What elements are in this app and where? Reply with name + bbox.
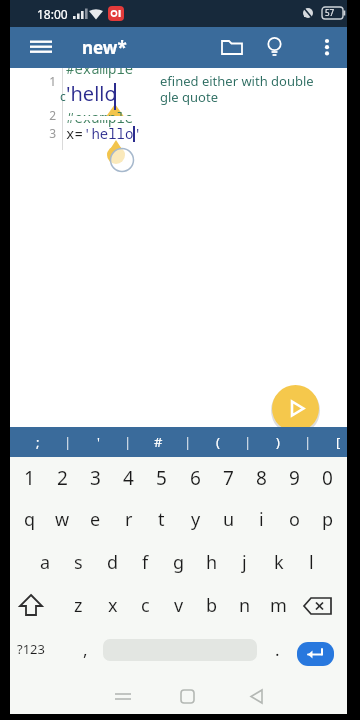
button[interactable]: 5 (145, 457, 178, 499)
staticText: c (141, 593, 150, 618)
staticText: ) (276, 433, 280, 451)
button[interactable]: ) (263, 427, 293, 457)
staticText: 'hello' (83, 124, 142, 143)
staticText: r (125, 507, 133, 532)
button[interactable]: m (262, 584, 295, 626)
button[interactable]: r (112, 498, 145, 540)
button[interactable]: s (62, 541, 95, 583)
button[interactable]: i (245, 498, 278, 540)
button[interactable]: x (96, 584, 129, 626)
button[interactable]: 7 (212, 457, 245, 499)
button[interactable] (297, 642, 334, 666)
staticText: 'hello (66, 80, 117, 107)
button[interactable]: h (195, 541, 228, 583)
button[interactable] (298, 590, 340, 622)
button[interactable] (10, 588, 52, 624)
staticText: # (154, 433, 163, 451)
button[interactable]: . (262, 632, 292, 666)
button[interactable]: 0 (311, 457, 344, 499)
button[interactable]: ( (203, 427, 233, 457)
button[interactable]: | (113, 427, 143, 457)
staticText: . (275, 638, 280, 661)
staticText: a (40, 550, 51, 575)
staticText: | (184, 433, 192, 451)
button[interactable]: 3 (79, 457, 112, 499)
staticText: x= (66, 124, 83, 143)
staticText: b (206, 593, 218, 618)
button[interactable]: c (129, 584, 162, 626)
button[interactable]: q (13, 498, 46, 540)
button[interactable]: u (212, 498, 245, 540)
staticText: 1 (34, 73, 56, 89)
button[interactable]: b (195, 584, 228, 626)
staticText: efined either with double (160, 72, 314, 90)
staticText: c (60, 88, 66, 104)
staticText: d (107, 550, 119, 575)
button[interactable]: ; (23, 427, 53, 457)
button[interactable] (312, 27, 344, 68)
staticText: t (158, 507, 165, 532)
button[interactable] (257, 27, 293, 68)
button[interactable]: n (228, 584, 261, 626)
button[interactable]: l (295, 541, 328, 583)
staticText: v (174, 593, 184, 618)
staticText: f (142, 550, 149, 575)
button[interactable]: # (143, 427, 173, 457)
staticText: y (191, 507, 201, 532)
staticText: q (24, 507, 36, 532)
button[interactable]: | (233, 427, 263, 457)
button[interactable]: w (46, 498, 79, 540)
button[interactable]: f (129, 541, 162, 583)
staticText: | (124, 433, 132, 451)
button[interactable]: z (62, 584, 95, 626)
staticText: 6 (190, 465, 201, 491)
button[interactable]: v (162, 584, 195, 626)
button[interactable]: | (173, 427, 203, 457)
button[interactable]: j (228, 541, 261, 583)
staticText: 5 (156, 465, 167, 491)
staticText: 57 (325, 7, 335, 18)
button[interactable]: 8 (245, 457, 278, 499)
staticText: 8 (256, 465, 267, 491)
staticText: l (309, 550, 314, 575)
staticText: w (55, 507, 70, 532)
button[interactable]: 4 (112, 457, 145, 499)
button[interactable]: 2 (46, 457, 79, 499)
button[interactable]: t (145, 498, 178, 540)
staticText: | (304, 433, 312, 451)
staticText: ; (36, 433, 40, 451)
button[interactable]: 1 (13, 457, 46, 499)
staticText: o (289, 507, 300, 532)
button[interactable]: e (79, 498, 112, 540)
button[interactable] (22, 27, 62, 68)
button[interactable]: d (96, 541, 129, 583)
staticText: 2 (57, 465, 68, 491)
button[interactable] (272, 385, 319, 432)
staticText: 3 (34, 125, 56, 141)
button[interactable]: ?123 (10, 632, 52, 666)
button[interactable]: [ (323, 427, 353, 457)
staticText: z (74, 593, 83, 618)
button[interactable]: y (179, 498, 212, 540)
button[interactable]: o (278, 498, 311, 540)
staticText: 2 (34, 107, 56, 123)
staticText: k (274, 550, 284, 575)
staticText: ' (97, 433, 100, 451)
button[interactable]: k (262, 541, 295, 583)
button[interactable]: | (53, 427, 83, 457)
button[interactable] (214, 27, 250, 68)
button[interactable]: ' (83, 427, 113, 457)
staticText: 7 (223, 465, 234, 491)
button[interactable]: a (29, 541, 62, 583)
button[interactable]: g (162, 541, 195, 583)
staticText: h (206, 550, 218, 575)
staticText: u (223, 507, 235, 532)
button[interactable]: 9 (278, 457, 311, 499)
button[interactable]: | (293, 427, 323, 457)
button[interactable]: , (70, 632, 100, 666)
staticText: j (242, 550, 247, 575)
staticText: ?123 (17, 640, 45, 658)
button[interactable]: 6 (179, 457, 212, 499)
button[interactable]: p (311, 498, 344, 540)
